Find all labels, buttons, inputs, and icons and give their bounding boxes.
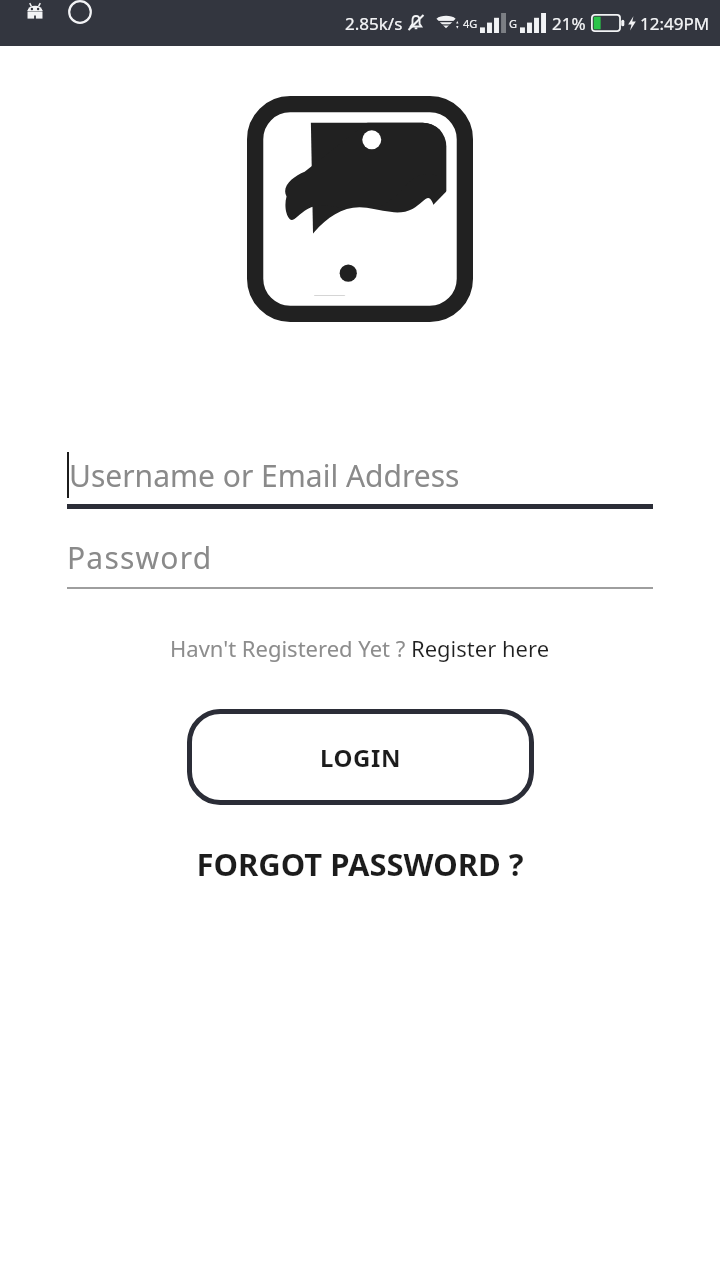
staticText: Password [67,537,213,578]
staticText: G [509,16,518,31]
staticText: 2.85k/s [345,12,403,35]
staticText: Register here [411,633,550,663]
button[interactable]: Password [67,537,653,589]
staticText: 12:49PM [640,12,710,35]
button[interactable]: FORGOT PASSWORD ? [196,843,524,885]
staticText: Username or Email Address [69,455,460,496]
staticText: 21% [552,12,586,35]
staticText: FORGOT PASSWORD ? [196,843,524,885]
button[interactable]: Username or Email Address [67,452,653,509]
staticText: LOGIN [320,741,402,774]
staticText: Havn't Registered Yet ? [170,633,411,663]
button[interactable]: LOGIN [187,709,534,805]
button[interactable]: Havn't Registered Yet ? [170,633,550,663]
staticText: 4G [463,16,478,31]
